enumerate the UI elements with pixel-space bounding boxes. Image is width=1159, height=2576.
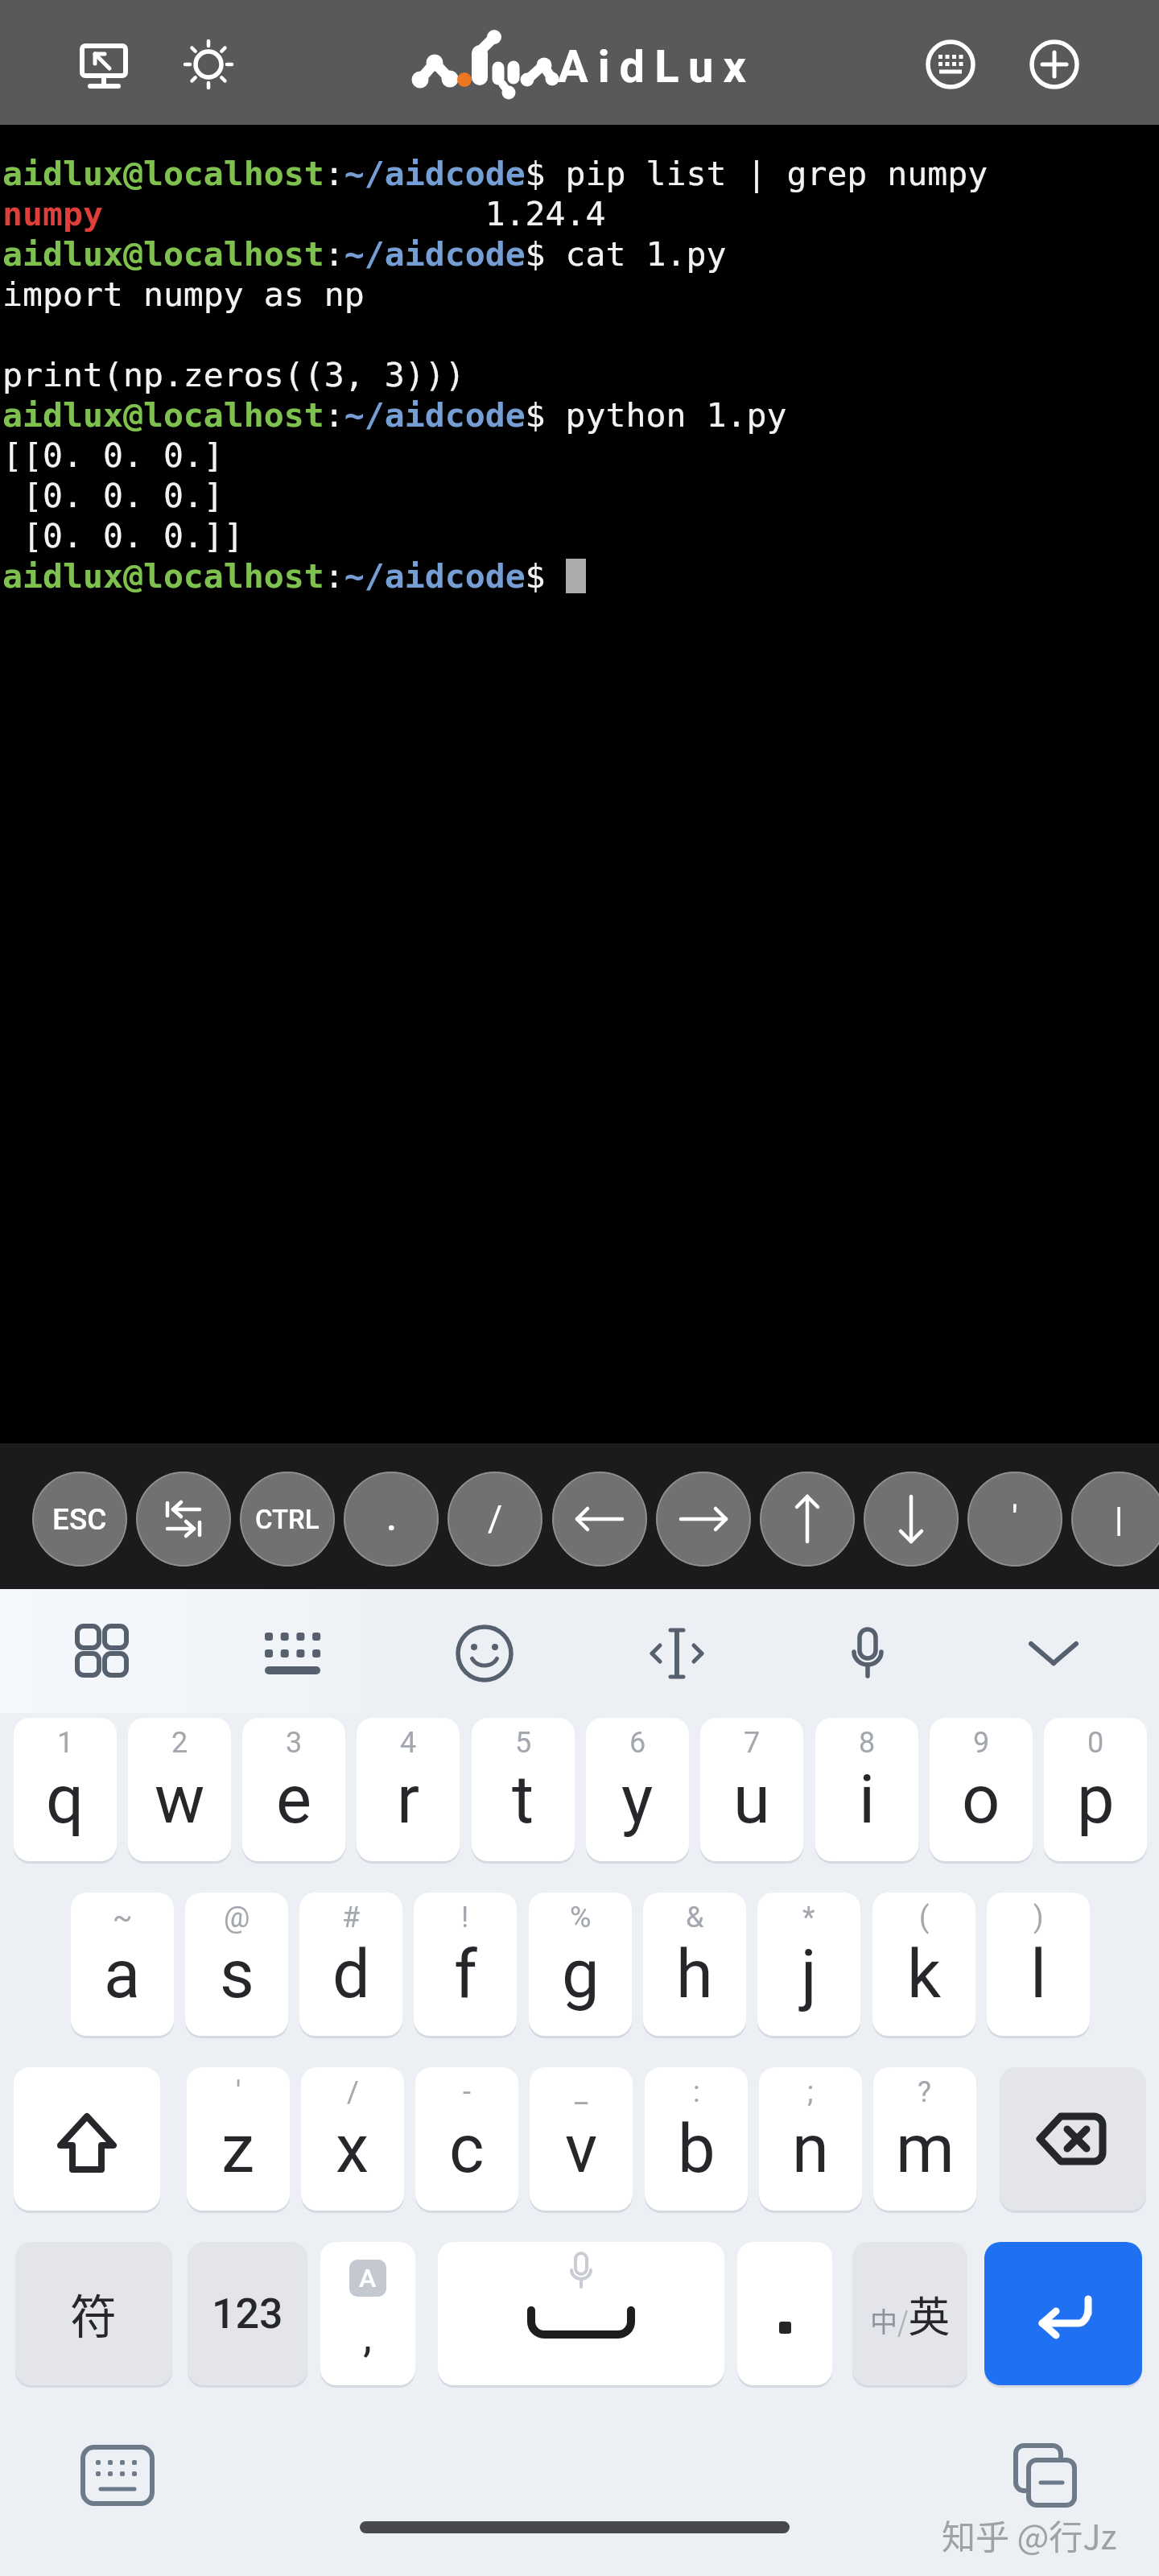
button[interactable]: ( bbox=[872, 1893, 975, 2036]
button[interactable] bbox=[438, 2242, 724, 2385]
button[interactable]: # bbox=[299, 1893, 402, 2036]
staticText: AidLux bbox=[558, 40, 756, 93]
button[interactable]: _ bbox=[530, 2067, 633, 2211]
staticText: [0. 0. 0.] bbox=[2, 476, 224, 514]
staticText: 6 bbox=[629, 1726, 646, 1760]
button[interactable] bbox=[1000, 2067, 1146, 2211]
staticText: CTRL bbox=[255, 1504, 320, 1535]
staticText: ! bbox=[461, 1901, 469, 1934]
button[interactable] bbox=[737, 2242, 832, 2385]
staticText: & bbox=[686, 1901, 704, 1934]
button[interactable] bbox=[72, 36, 137, 97]
button[interactable]: 9 bbox=[930, 1718, 1033, 1861]
staticText: ( bbox=[919, 1901, 930, 1934]
button[interactable]: / bbox=[301, 2067, 404, 2211]
button[interactable]: ' bbox=[187, 2067, 290, 2211]
staticText: aidlux@localhost:~/aidcode$ cat 1.py bbox=[2, 234, 727, 273]
button[interactable] bbox=[436, 1597, 533, 1705]
staticText: r bbox=[397, 1761, 420, 1839]
button[interactable]: 5 bbox=[472, 1718, 575, 1861]
staticText: : bbox=[693, 2075, 700, 2109]
button[interactable]: 0 bbox=[1044, 1718, 1147, 1861]
staticText: ) bbox=[1033, 1901, 1044, 1934]
staticText: import numpy as np bbox=[2, 275, 365, 313]
button[interactable] bbox=[552, 1472, 647, 1567]
staticText: 0 bbox=[1087, 1726, 1104, 1760]
button[interactable] bbox=[75, 2439, 160, 2512]
staticText: / bbox=[347, 2075, 359, 2109]
staticText: * bbox=[802, 1901, 815, 1934]
button[interactable]: : bbox=[645, 2067, 748, 2211]
staticText: ; bbox=[807, 2075, 814, 2109]
staticText: h bbox=[676, 1935, 713, 2013]
button[interactable]: ; bbox=[759, 2067, 862, 2211]
button[interactable] bbox=[984, 2242, 1142, 2385]
button[interactable] bbox=[819, 1597, 916, 1705]
staticText: g bbox=[562, 1935, 600, 2013]
staticText: # bbox=[342, 1901, 361, 1934]
staticText: d bbox=[332, 1935, 370, 2013]
staticText: numpy 1.24.4 bbox=[2, 194, 606, 233]
button[interactable]: 2 bbox=[128, 1718, 231, 1861]
button[interactable]: 1 bbox=[14, 1718, 117, 1861]
button[interactable] bbox=[54, 1597, 151, 1705]
staticText: 符 bbox=[70, 2280, 118, 2347]
button[interactable]: ' bbox=[967, 1472, 1062, 1567]
button[interactable]: 123 bbox=[188, 2242, 307, 2385]
button[interactable] bbox=[925, 39, 976, 90]
staticText: v bbox=[565, 2110, 598, 2188]
button[interactable]: 6 bbox=[586, 1718, 689, 1861]
button[interactable] bbox=[136, 1472, 231, 1567]
staticText: x bbox=[336, 2110, 369, 2188]
staticText: aidlux@localhost:~/aidcode$ python 1.py bbox=[2, 395, 787, 434]
staticText: / bbox=[488, 1498, 503, 1540]
button[interactable] bbox=[183, 39, 234, 90]
staticText: z bbox=[221, 2110, 255, 2188]
button[interactable]: 中/英 bbox=[852, 2242, 967, 2385]
button[interactable]: ESC bbox=[32, 1472, 127, 1567]
button[interactable]: @ bbox=[185, 1893, 288, 2036]
staticText: | bbox=[1115, 1500, 1124, 1539]
button[interactable] bbox=[1029, 39, 1080, 90]
button[interactable]: ~ bbox=[71, 1893, 174, 2036]
button[interactable] bbox=[244, 1597, 340, 1705]
button[interactable]: A bbox=[320, 2242, 415, 2385]
button[interactable]: 4 bbox=[357, 1718, 460, 1861]
button[interactable]: ? bbox=[873, 2067, 976, 2211]
button[interactable] bbox=[1002, 2438, 1086, 2513]
button[interactable]: . bbox=[344, 1472, 439, 1567]
staticText: 123 bbox=[212, 2289, 283, 2339]
button[interactable] bbox=[656, 1472, 751, 1567]
button[interactable]: 符 bbox=[15, 2242, 172, 2385]
staticText: q bbox=[46, 1761, 85, 1839]
staticText: [[0. 0. 0.] bbox=[2, 436, 224, 474]
staticText: ~ bbox=[113, 1901, 133, 1934]
staticText: % bbox=[570, 1901, 592, 1934]
staticText: 中/英 bbox=[870, 2284, 951, 2344]
staticText: c bbox=[449, 2110, 485, 2188]
button[interactable]: ) bbox=[987, 1893, 1090, 2036]
staticText: . bbox=[386, 1496, 397, 1539]
staticText: o bbox=[962, 1761, 1000, 1839]
button[interactable]: * bbox=[757, 1893, 860, 2036]
button[interactable]: 7 bbox=[700, 1718, 803, 1861]
button[interactable]: 8 bbox=[815, 1718, 918, 1861]
button[interactable]: / bbox=[448, 1472, 542, 1567]
button[interactable]: - bbox=[415, 2067, 518, 2211]
button[interactable]: & bbox=[643, 1893, 746, 2036]
staticText: 5 bbox=[515, 1726, 532, 1760]
button[interactable]: 3 bbox=[242, 1718, 345, 1861]
button[interactable]: ! bbox=[414, 1893, 517, 2036]
button[interactable] bbox=[629, 1597, 725, 1705]
button[interactable] bbox=[864, 1472, 959, 1567]
button[interactable] bbox=[14, 2067, 160, 2211]
staticText: a bbox=[104, 1935, 141, 2013]
staticText: @ bbox=[224, 1901, 250, 1934]
button[interactable] bbox=[1005, 1597, 1102, 1705]
staticText: y bbox=[621, 1761, 654, 1839]
button[interactable]: CTRL bbox=[240, 1472, 335, 1567]
button[interactable]: % bbox=[529, 1893, 632, 2036]
button[interactable]: | bbox=[1071, 1472, 1159, 1567]
button[interactable] bbox=[760, 1472, 855, 1567]
staticText: 7 bbox=[744, 1726, 761, 1760]
